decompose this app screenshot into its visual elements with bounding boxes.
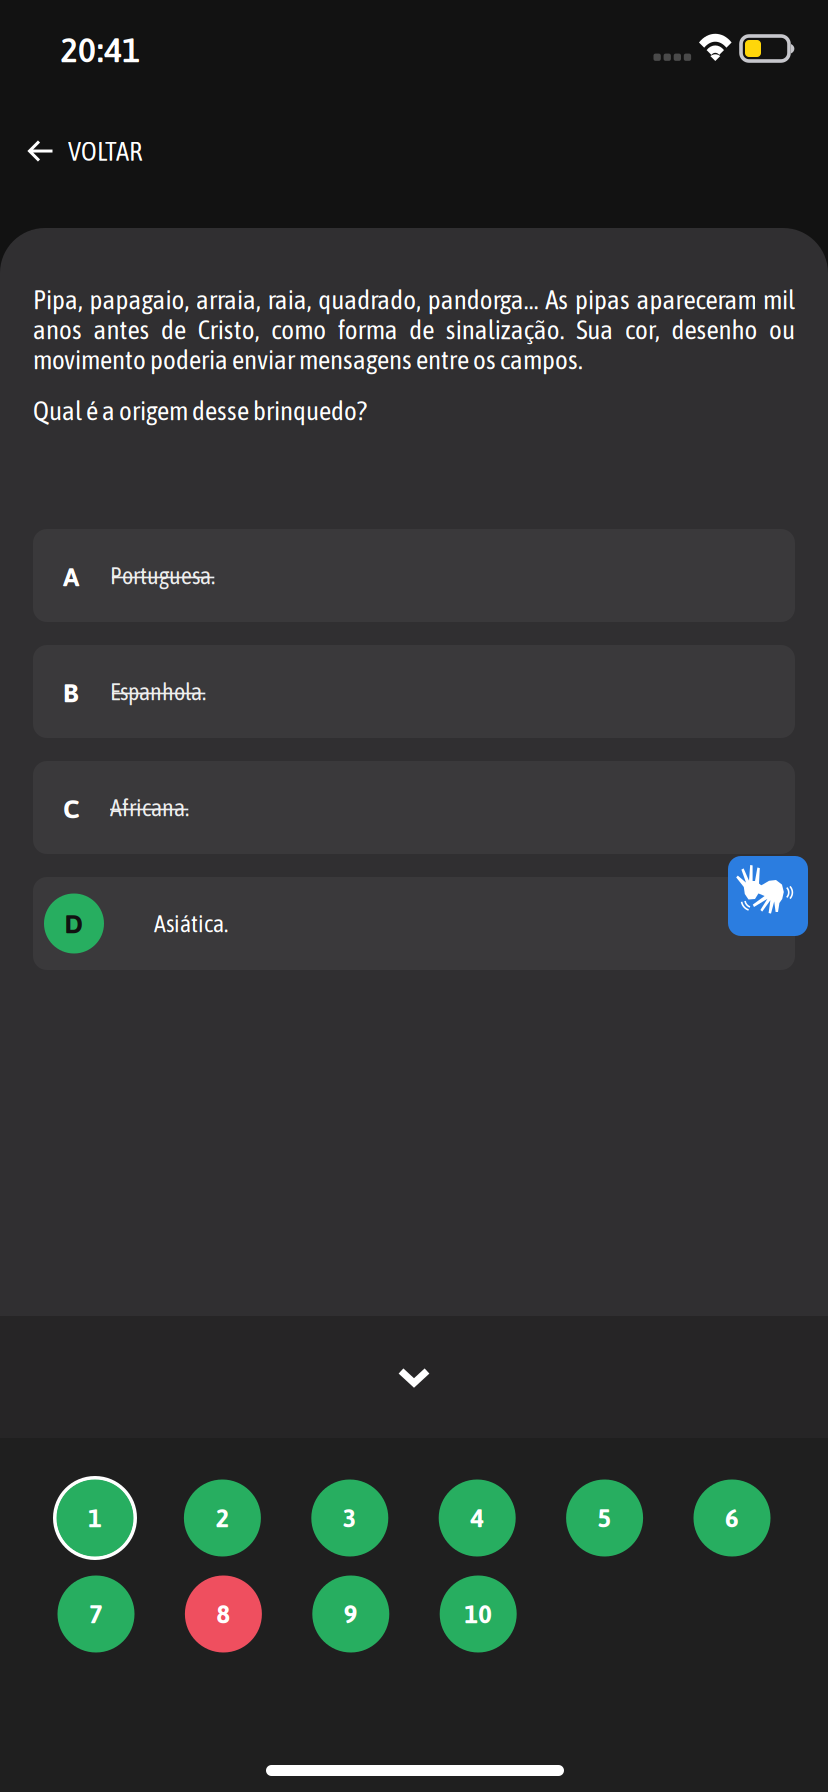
button[interactable]: 8: [183, 1574, 263, 1654]
button[interactable]: B: [33, 645, 795, 738]
button[interactable]: 10: [438, 1574, 518, 1654]
staticText: movimento poderia enviar mensagens entre…: [33, 344, 583, 375]
staticText: quadrado,: [318, 284, 421, 315]
staticText: Portuguesa.: [110, 562, 215, 589]
staticText: pipas: [575, 284, 630, 315]
staticText: raia,: [268, 284, 312, 315]
staticText: Africana.: [110, 794, 189, 821]
staticText: 5: [598, 1503, 612, 1532]
button[interactable]: VOLTAR: [28, 123, 188, 179]
staticText: como: [271, 314, 326, 345]
staticText: pandorga...: [428, 284, 539, 315]
staticText: apareceram: [636, 284, 756, 315]
staticText: forma: [338, 314, 398, 345]
staticText: Asiática.: [154, 910, 228, 937]
button[interactable]: Collapse question list: [371, 1341, 457, 1413]
staticText: Cristo,: [198, 314, 260, 345]
button[interactable]: VLibras sign language translator: [728, 856, 808, 936]
button[interactable]: C: [33, 761, 795, 854]
button[interactable]: 6: [692, 1478, 772, 1558]
button[interactable]: 1: [55, 1478, 135, 1558]
button[interactable]: 5: [565, 1478, 645, 1558]
staticText: antes: [93, 314, 149, 345]
staticText: cor,: [625, 314, 660, 345]
button[interactable]: 9: [311, 1574, 391, 1654]
staticText: Sua: [576, 314, 613, 345]
button[interactable]: 3: [310, 1478, 390, 1558]
button[interactable]: 7: [56, 1574, 136, 1654]
staticText: 6: [725, 1503, 739, 1532]
staticText: desenho: [671, 314, 757, 345]
staticText: Espanhola.: [110, 678, 206, 705]
staticText: As: [545, 284, 568, 315]
staticText: 9: [344, 1599, 358, 1628]
staticText: Pipa,: [33, 284, 83, 315]
staticText: 20:41: [60, 31, 140, 69]
staticText: mil: [763, 284, 795, 315]
button[interactable]: 2: [182, 1478, 262, 1558]
staticText: arraia,: [196, 284, 261, 315]
staticText: papagaio,: [90, 284, 190, 315]
staticText: de: [161, 314, 186, 345]
staticText: 8: [216, 1599, 230, 1628]
staticText: anos: [33, 314, 82, 345]
staticText: sinalização.: [446, 314, 565, 345]
staticText: de: [409, 314, 434, 345]
staticText: 10: [464, 1599, 492, 1628]
staticText: Qual é a origem desse brinquedo?: [33, 395, 367, 426]
staticText: ou: [769, 314, 795, 345]
staticText: 3: [343, 1503, 357, 1532]
button[interactable]: 4: [437, 1478, 517, 1558]
staticText: B: [63, 677, 79, 708]
button[interactable]: A: [33, 529, 795, 622]
staticText: A: [63, 561, 79, 592]
staticText: 1: [88, 1503, 102, 1532]
staticText: 4: [470, 1503, 484, 1532]
button[interactable]: D: [33, 877, 795, 970]
staticText: 7: [89, 1599, 103, 1628]
staticText: C: [63, 793, 80, 824]
staticText: D: [64, 908, 83, 939]
staticText: 2: [215, 1503, 229, 1532]
staticText: VOLTAR: [68, 136, 142, 166]
